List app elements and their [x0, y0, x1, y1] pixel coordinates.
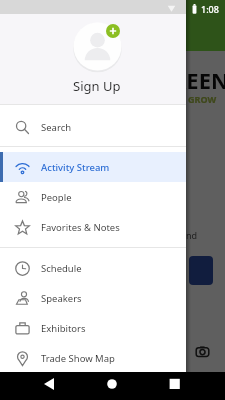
button[interactable]: Camera	[195, 344, 210, 359]
button[interactable]	[189, 256, 213, 285]
button[interactable]: Speakers	[0, 283, 186, 313]
button[interactable]: Trade Show Map	[0, 343, 186, 373]
staticText: GREEN	[156, 65, 225, 95]
staticText: People	[41, 191, 72, 204]
button[interactable]: Exhibitors	[0, 313, 186, 343]
button[interactable]: Activity Stream	[0, 152, 186, 182]
button[interactable]: Favorites & Notes	[0, 212, 186, 242]
staticText: nd	[186, 229, 198, 241]
staticText: GROW	[188, 93, 217, 105]
button[interactable]: Search	[0, 112, 186, 142]
staticText: Search	[41, 121, 72, 134]
staticText: Exhibitors	[41, 322, 86, 335]
staticText: Sign Up	[73, 77, 121, 95]
staticText: Speakers	[41, 292, 82, 305]
staticText: Schedule	[41, 262, 82, 275]
staticText: Activity Stream	[41, 161, 110, 174]
button[interactable]: People	[0, 182, 186, 212]
staticText: 1:08	[201, 3, 219, 15]
staticText: Favorites & Notes	[41, 221, 120, 234]
button[interactable]: Schedule	[0, 253, 186, 283]
staticText: Trade Show Map	[41, 352, 115, 365]
